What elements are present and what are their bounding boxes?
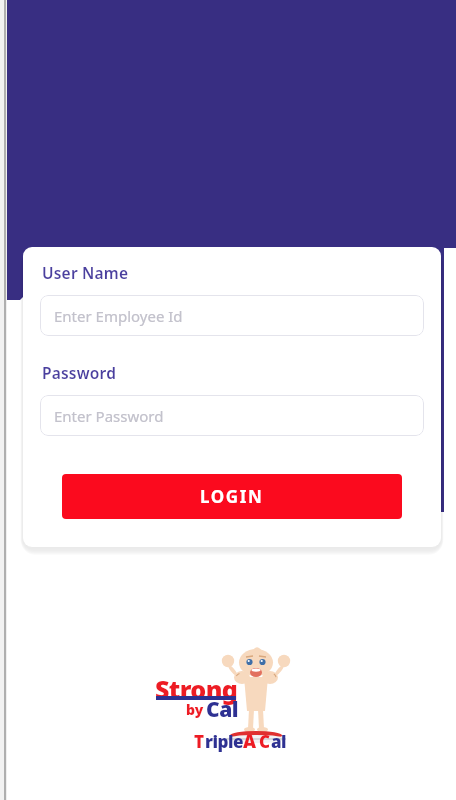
- staticText: Strong: [155, 672, 238, 706]
- staticText: al: [271, 730, 287, 753]
- staticText: Password: [42, 362, 117, 383]
- staticText: Cal: [206, 695, 238, 724]
- staticText: Enter Employee Id: [54, 306, 183, 326]
- staticText: Enter Password: [54, 406, 164, 426]
- staticText: LOGIN: [200, 485, 264, 508]
- staticText: User Name: [42, 262, 129, 283]
- staticText: riple: [205, 730, 243, 753]
- staticText: C: [259, 730, 271, 753]
- staticText: by: [186, 700, 204, 719]
- button[interactable]: Enter Password: [40, 395, 424, 436]
- staticText: T: [194, 730, 205, 753]
- button[interactable]: LOGIN: [62, 474, 402, 519]
- button[interactable]: Enter Employee Id: [40, 295, 424, 336]
- staticText: A: [243, 729, 257, 754]
